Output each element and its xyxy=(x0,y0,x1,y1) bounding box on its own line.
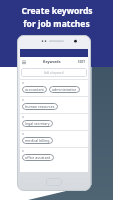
staticText: office assistant xyxy=(25,155,51,160)
button[interactable]: accountant xyxy=(20,80,88,96)
staticText: Create keywords xyxy=(21,5,93,17)
button[interactable]: medical billing xyxy=(22,137,53,144)
staticText: medical billing xyxy=(25,138,50,143)
staticText: human resources xyxy=(25,104,55,109)
staticText: Add a keyword xyxy=(44,71,64,75)
button[interactable]: legal secretary xyxy=(20,114,88,130)
button[interactable]: administrative xyxy=(49,86,80,93)
staticText: accountant xyxy=(25,87,44,92)
button[interactable]: legal secretary xyxy=(22,120,53,127)
staticText: legal secretary xyxy=(25,121,50,126)
staticText: for job matches xyxy=(23,18,90,30)
button[interactable]: human resources xyxy=(20,97,88,113)
button[interactable]: EDIT xyxy=(78,60,86,64)
staticText: administrative xyxy=(52,87,77,92)
button[interactable]: medical billing xyxy=(20,131,88,147)
button[interactable]: human resources xyxy=(22,103,58,110)
button[interactable]: office assistant xyxy=(22,154,54,161)
button[interactable]: Menu xyxy=(22,60,26,64)
staticText: Keywords xyxy=(43,59,61,64)
button[interactable]: office assistant xyxy=(20,148,88,164)
staticText: EDIT xyxy=(78,60,86,64)
button[interactable]: Add a keyword xyxy=(21,68,87,77)
button[interactable]: accountant xyxy=(22,86,47,93)
